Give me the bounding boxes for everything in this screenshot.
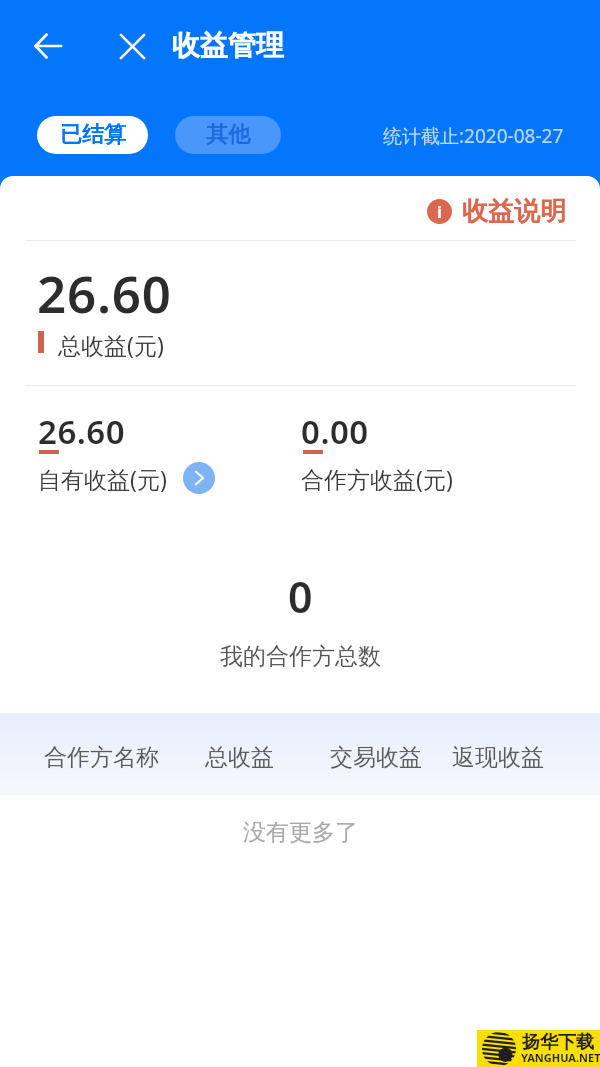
staticText: 扬华下载 [522,1031,594,1054]
staticText: 其他 [206,121,250,149]
staticText: 自有收益(元) [38,463,167,494]
button[interactable]: View details [183,462,215,494]
staticText: 26.60 [37,258,172,327]
staticText: 我的合作方总数 [220,642,381,671]
button[interactable]: Back [24,22,72,70]
staticText: 26.60 [38,409,126,454]
staticText: 收益管理 [172,28,284,63]
staticText: 总收益 [205,743,274,772]
staticText: 合作方收益(元) [301,463,453,494]
staticText: 统计截止:2020-08-27 [383,123,564,149]
button[interactable]: 其他 [175,116,281,154]
staticText: 返现收益 [452,743,544,772]
staticText: 收益说明 [462,195,566,228]
staticText: i [437,201,442,223]
staticText: 合作方名称 [44,743,159,772]
staticText: 0 [288,567,313,626]
button[interactable]: 已结算 [37,116,148,154]
staticText: YANGHUA.NET [521,1050,600,1065]
staticText: 已结算 [60,121,126,149]
staticText: 交易收益 [330,743,422,772]
button[interactable]: i [417,187,576,236]
button[interactable]: Close [108,22,156,70]
staticText: 0.00 [301,409,369,454]
staticText: 总收益(元) [58,329,164,360]
staticText: 没有更多了 [243,818,358,847]
